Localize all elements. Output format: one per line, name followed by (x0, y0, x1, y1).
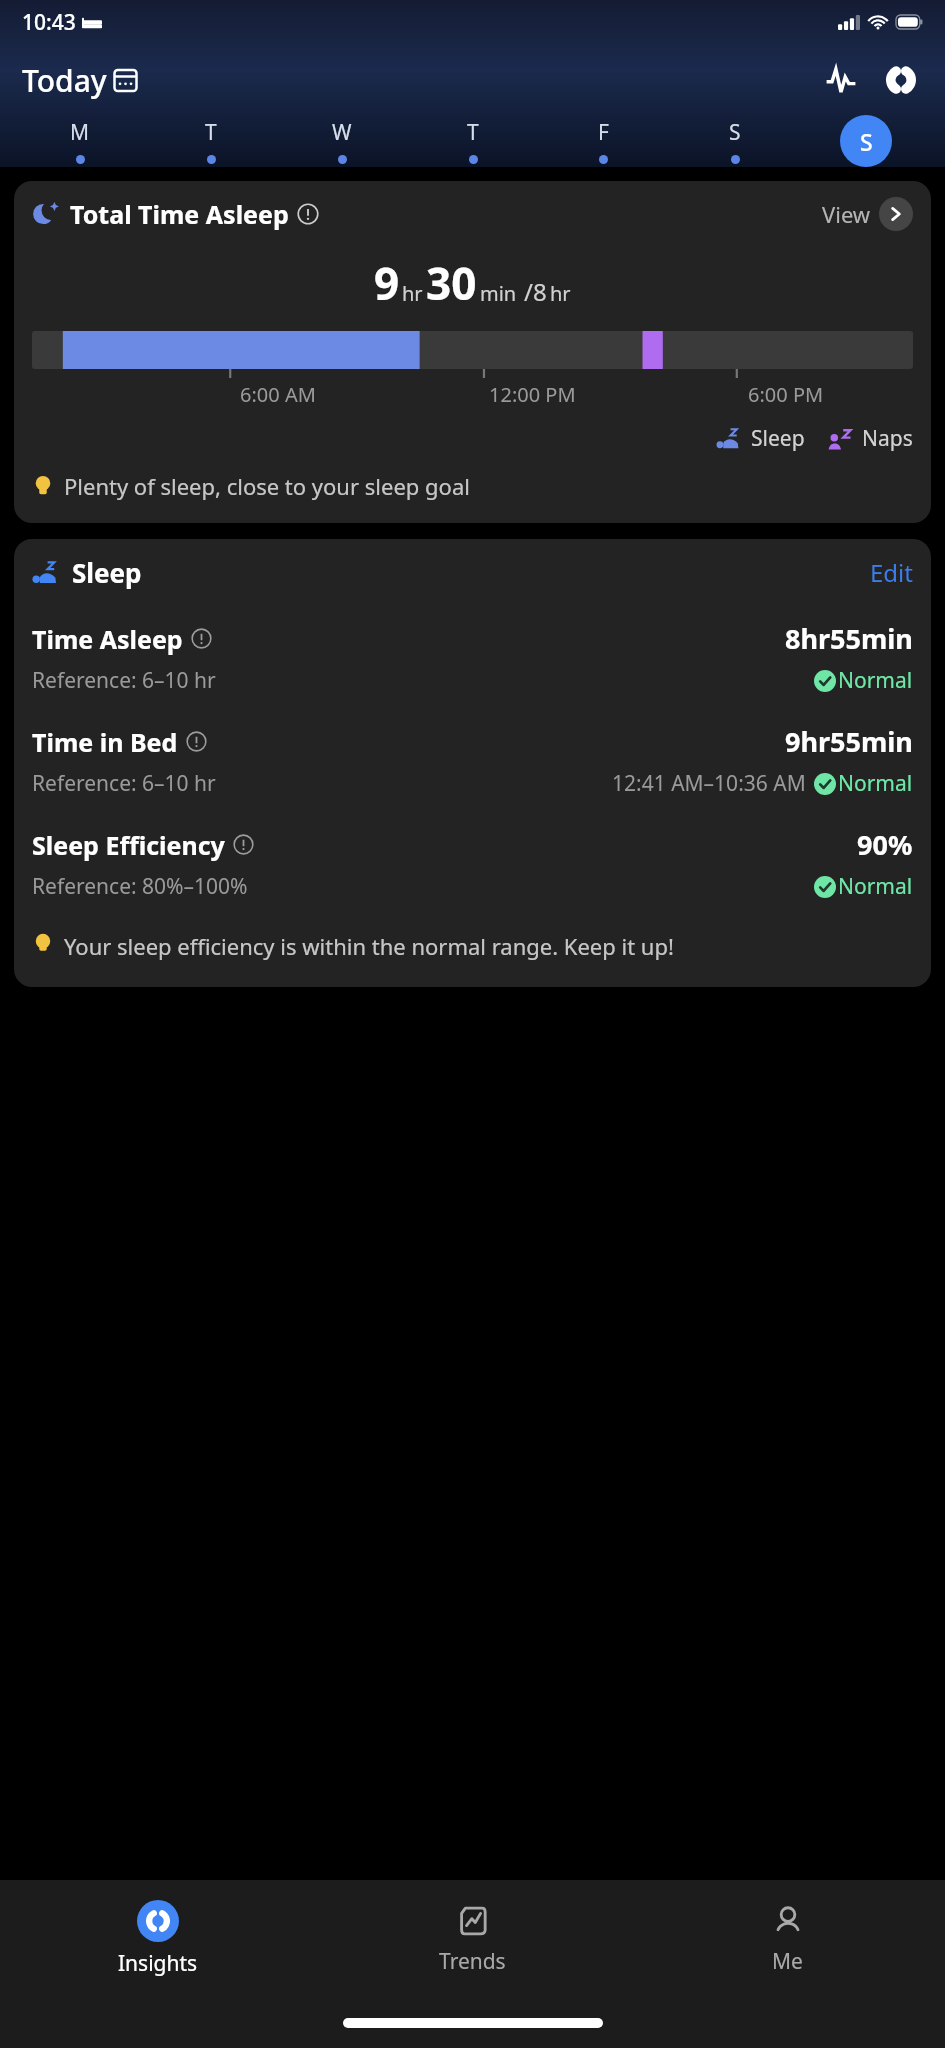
button[interactable]: W (276, 114, 407, 167)
staticText: Time Asleep (32, 622, 183, 656)
staticText: Sleep Efficiency (32, 828, 225, 862)
button[interactable]: Me (630, 1880, 945, 1998)
button[interactable]: F (538, 114, 669, 167)
staticText: Time in Bed (32, 725, 178, 759)
staticText: Insights (118, 1949, 198, 1978)
staticText: 30 (426, 253, 477, 313)
staticText: Total Time Asleep (70, 197, 289, 231)
staticText: 12:00 PM (489, 381, 576, 408)
staticText: Normal (838, 872, 913, 901)
staticText: 6:00 AM (240, 381, 316, 408)
button[interactable]: Sleep (32, 555, 913, 590)
staticText: hr (402, 280, 423, 307)
staticText: Reference: 6–10 hr (32, 666, 216, 695)
staticText: Sleep (72, 555, 142, 590)
staticText: Reference: 80%–100% (32, 872, 248, 901)
button[interactable]: Sleep Efficiency (32, 826, 913, 901)
staticText: 9 (374, 253, 400, 313)
staticText: Reference: 6–10 hr (32, 769, 216, 798)
staticText: S (729, 118, 741, 147)
staticText: 9hr55min (785, 723, 913, 760)
staticText: 8hr55min (785, 620, 913, 657)
button[interactable]: View (822, 197, 913, 231)
button[interactable]: Trends (315, 1880, 630, 1998)
staticText: F (598, 118, 609, 147)
staticText: M (70, 118, 90, 147)
staticText: Naps (862, 424, 913, 453)
staticText: T (467, 118, 479, 147)
button[interactable]: Time Asleep (32, 620, 913, 695)
button[interactable]: Total Time Asleep (14, 181, 931, 523)
staticText: W (332, 118, 352, 147)
button[interactable]: Edit (870, 556, 913, 589)
button[interactable]: Time in Bed (32, 723, 913, 798)
button[interactable]: T (407, 114, 538, 167)
staticText: Edit (870, 556, 913, 589)
staticText: min (480, 280, 517, 307)
button[interactable]: Today (22, 60, 138, 101)
staticText: S (860, 126, 873, 157)
staticText: Me (772, 1947, 803, 1976)
staticText: 10:43 (22, 8, 76, 37)
staticText: Today (22, 60, 107, 101)
staticText: /8 (524, 275, 547, 308)
staticText: Your sleep efficiency is within the norm… (64, 931, 913, 961)
button[interactable]: S (669, 114, 800, 167)
button[interactable]: Heart rate (819, 58, 863, 102)
staticText: View (822, 199, 871, 229)
staticText: Normal (838, 769, 913, 798)
button[interactable]: Insights (0, 1880, 315, 1998)
staticText: Normal (838, 666, 913, 695)
staticText: T (205, 118, 217, 147)
button[interactable]: T (145, 114, 276, 167)
button[interactable]: S (800, 114, 931, 167)
staticText: 90% (857, 826, 913, 863)
staticText: Plenty of sleep, close to your sleep goa… (64, 471, 470, 501)
staticText: 12:41 AM–10:36 AM (612, 769, 806, 798)
button[interactable]: M (14, 114, 145, 167)
staticText: Trends (439, 1947, 506, 1976)
button[interactable]: Sync (879, 58, 923, 102)
staticText: 6:00 PM (748, 381, 824, 408)
staticText: Sleep (751, 424, 805, 453)
staticText: hr (550, 280, 571, 307)
